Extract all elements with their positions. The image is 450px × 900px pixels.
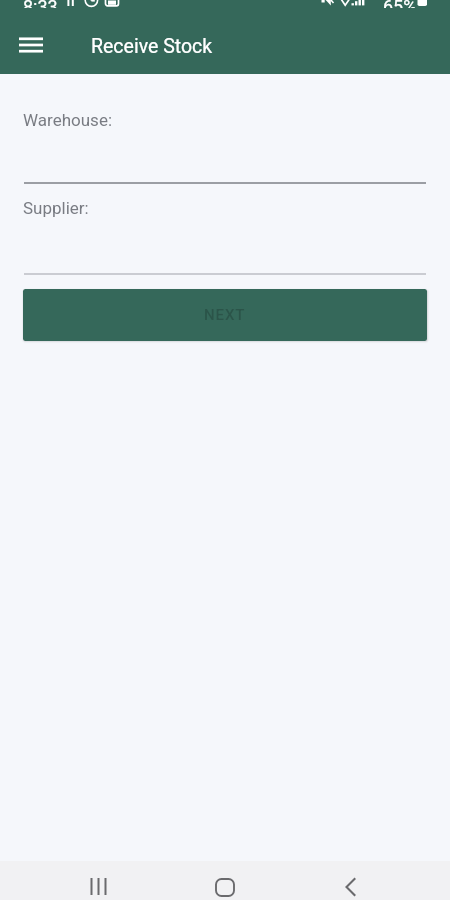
staticText: 8:33 — [23, 0, 58, 8]
button[interactable] — [24, 266, 426, 275]
staticText: Receive Stock — [91, 35, 213, 58]
staticText: NEXT — [204, 306, 246, 324]
staticText: 65% — [383, 0, 417, 8]
staticText: Warehouse: — [23, 110, 113, 130]
button[interactable]: Back — [322, 872, 379, 900]
button[interactable]: Home — [196, 872, 253, 900]
staticText: Supplier: — [23, 198, 89, 218]
button[interactable] — [24, 175, 426, 184]
button[interactable]: Recent apps — [69, 871, 126, 900]
button[interactable]: Open navigation menu — [6, 20, 55, 69]
